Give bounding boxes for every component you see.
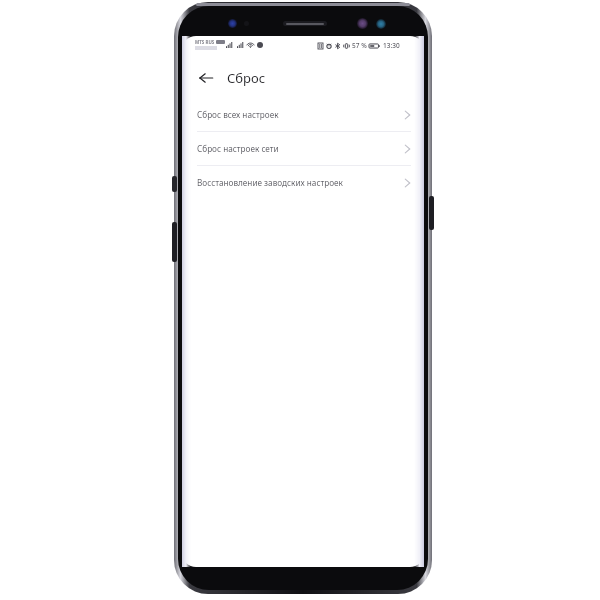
other: Volume — [172, 222, 177, 262]
staticText: MTS RUS — [195, 39, 215, 45]
staticText: Сброс всех настроек — [197, 109, 404, 120]
button[interactable]: Восстановление заводских настроек — [182, 166, 424, 199]
staticText: Восстановление заводских настроек — [197, 177, 404, 188]
staticText: 13:30 — [383, 41, 400, 50]
button[interactable]: Сброс настроек сети — [182, 132, 424, 166]
other: Power — [429, 196, 434, 230]
other: Bixby — [172, 176, 177, 192]
staticText: Сброс — [227, 69, 266, 87]
button[interactable]: Сброс всех настроек — [182, 98, 424, 132]
staticText: Сброс настроек сети — [197, 143, 404, 154]
button[interactable]: Back — [194, 66, 218, 90]
staticText: 57 % — [352, 41, 367, 50]
